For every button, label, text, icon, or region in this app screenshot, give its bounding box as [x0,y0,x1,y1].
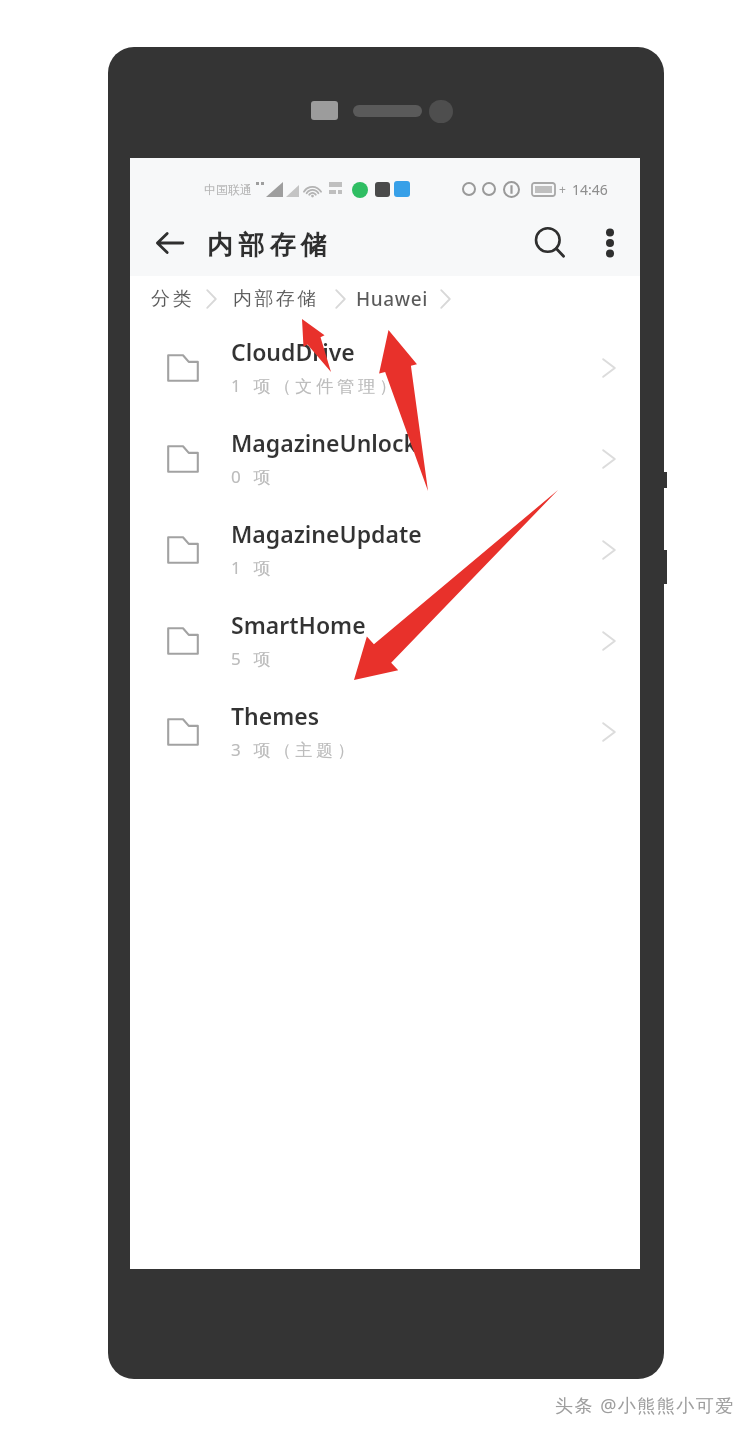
button[interactable]: SmartHome [130,595,640,686]
staticText: 1 项 [231,556,275,579]
button[interactable]: MagazineUpdate [130,504,640,595]
button[interactable]: MagazineUnlock [130,413,640,504]
staticText: CloudDrive [231,336,355,367]
staticText: 3 项（主题） [231,738,359,761]
staticText: MagazineUpdate [231,518,422,549]
staticText: 分类 [151,287,194,311]
button[interactable]: Search [524,217,574,267]
staticText: 5 项 [231,647,275,670]
button[interactable]: More options [585,218,635,268]
staticText: 内部存储 [207,229,332,262]
button[interactable]: Back [145,218,195,268]
staticText: Themes [231,700,320,731]
staticText: 头条 @小熊熊小可爱 [555,1393,735,1418]
staticText: SmartHome [231,609,366,640]
button[interactable]: 内部存储 [233,276,319,322]
staticText: 内部存储 [233,287,319,311]
staticText: 14:46 [572,180,608,199]
staticText: + [559,181,566,197]
button[interactable]: Themes [130,686,640,777]
staticText: Huawei [356,286,428,312]
button[interactable]: 分类 [151,276,194,322]
button[interactable]: Huawei [356,276,428,322]
staticText: 中国联通 [204,182,252,197]
staticText: MagazineUnlock [231,427,418,458]
staticText: 0 项 [231,465,275,488]
staticText: 1 项（文件管理） [231,374,401,397]
button[interactable]: CloudDrive [130,322,640,413]
